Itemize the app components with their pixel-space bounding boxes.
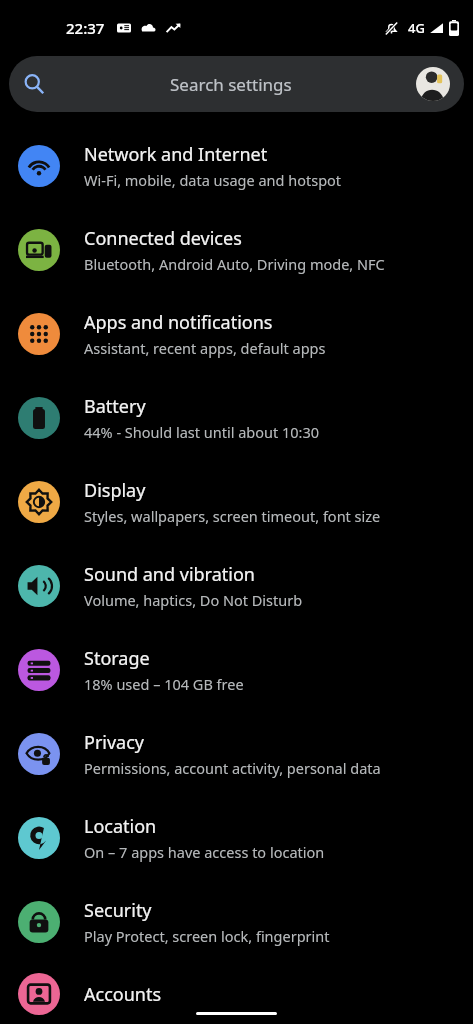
staticText: On – 7 apps have access to location: [84, 842, 325, 862]
button[interactable]: Account: [416, 67, 450, 101]
staticText: Apps and notifications: [84, 310, 273, 335]
button[interactable]: Search: [9, 56, 464, 112]
button[interactable]: Sound and vibration: [0, 544, 473, 628]
staticText: Bluetooth, Android Auto, Driving mode, N…: [84, 254, 385, 274]
staticText: Styles, wallpapers, screen timeout, font…: [84, 506, 381, 526]
button[interactable]: Network and Internet: [0, 124, 473, 208]
staticText: 18% used – 104 GB free: [84, 674, 244, 694]
staticText: 4G: [408, 19, 425, 37]
staticText: Play Protect, screen lock, fingerprint: [84, 926, 330, 946]
button[interactable]: Battery: [0, 376, 473, 460]
staticText: Privacy: [84, 730, 145, 755]
staticText: Display: [84, 478, 146, 503]
staticText: Location: [84, 814, 157, 839]
staticText: Sound and vibration: [84, 562, 255, 587]
button[interactable]: Location: [0, 796, 473, 880]
button[interactable]: Apps and notifications: [0, 292, 473, 376]
button[interactable]: Storage: [0, 628, 473, 712]
staticText: Volume, haptics, Do Not Disturb: [84, 590, 303, 610]
button[interactable]: Accounts: [0, 964, 473, 1024]
button[interactable]: Display: [0, 460, 473, 544]
other: Search: [23, 73, 45, 95]
staticText: Network and Internet: [84, 142, 268, 167]
staticText: Storage: [84, 646, 150, 671]
staticText: Security: [84, 898, 152, 923]
button[interactable]: Privacy: [0, 712, 473, 796]
button[interactable]: Connected devices: [0, 208, 473, 292]
button[interactable]: Security: [0, 880, 473, 964]
staticText: Accounts: [84, 982, 162, 1007]
staticText: Battery: [84, 394, 146, 419]
staticText: Search settings: [170, 73, 292, 96]
staticText: Assistant, recent apps, default apps: [84, 338, 326, 358]
staticText: Wi-Fi, mobile, data usage and hotspot: [84, 170, 342, 190]
staticText: 22:37: [66, 18, 105, 38]
staticText: Permissions, account activity, personal …: [84, 758, 381, 778]
staticText: 44% - Should last until about 10:30: [84, 422, 320, 442]
staticText: Connected devices: [84, 226, 242, 251]
